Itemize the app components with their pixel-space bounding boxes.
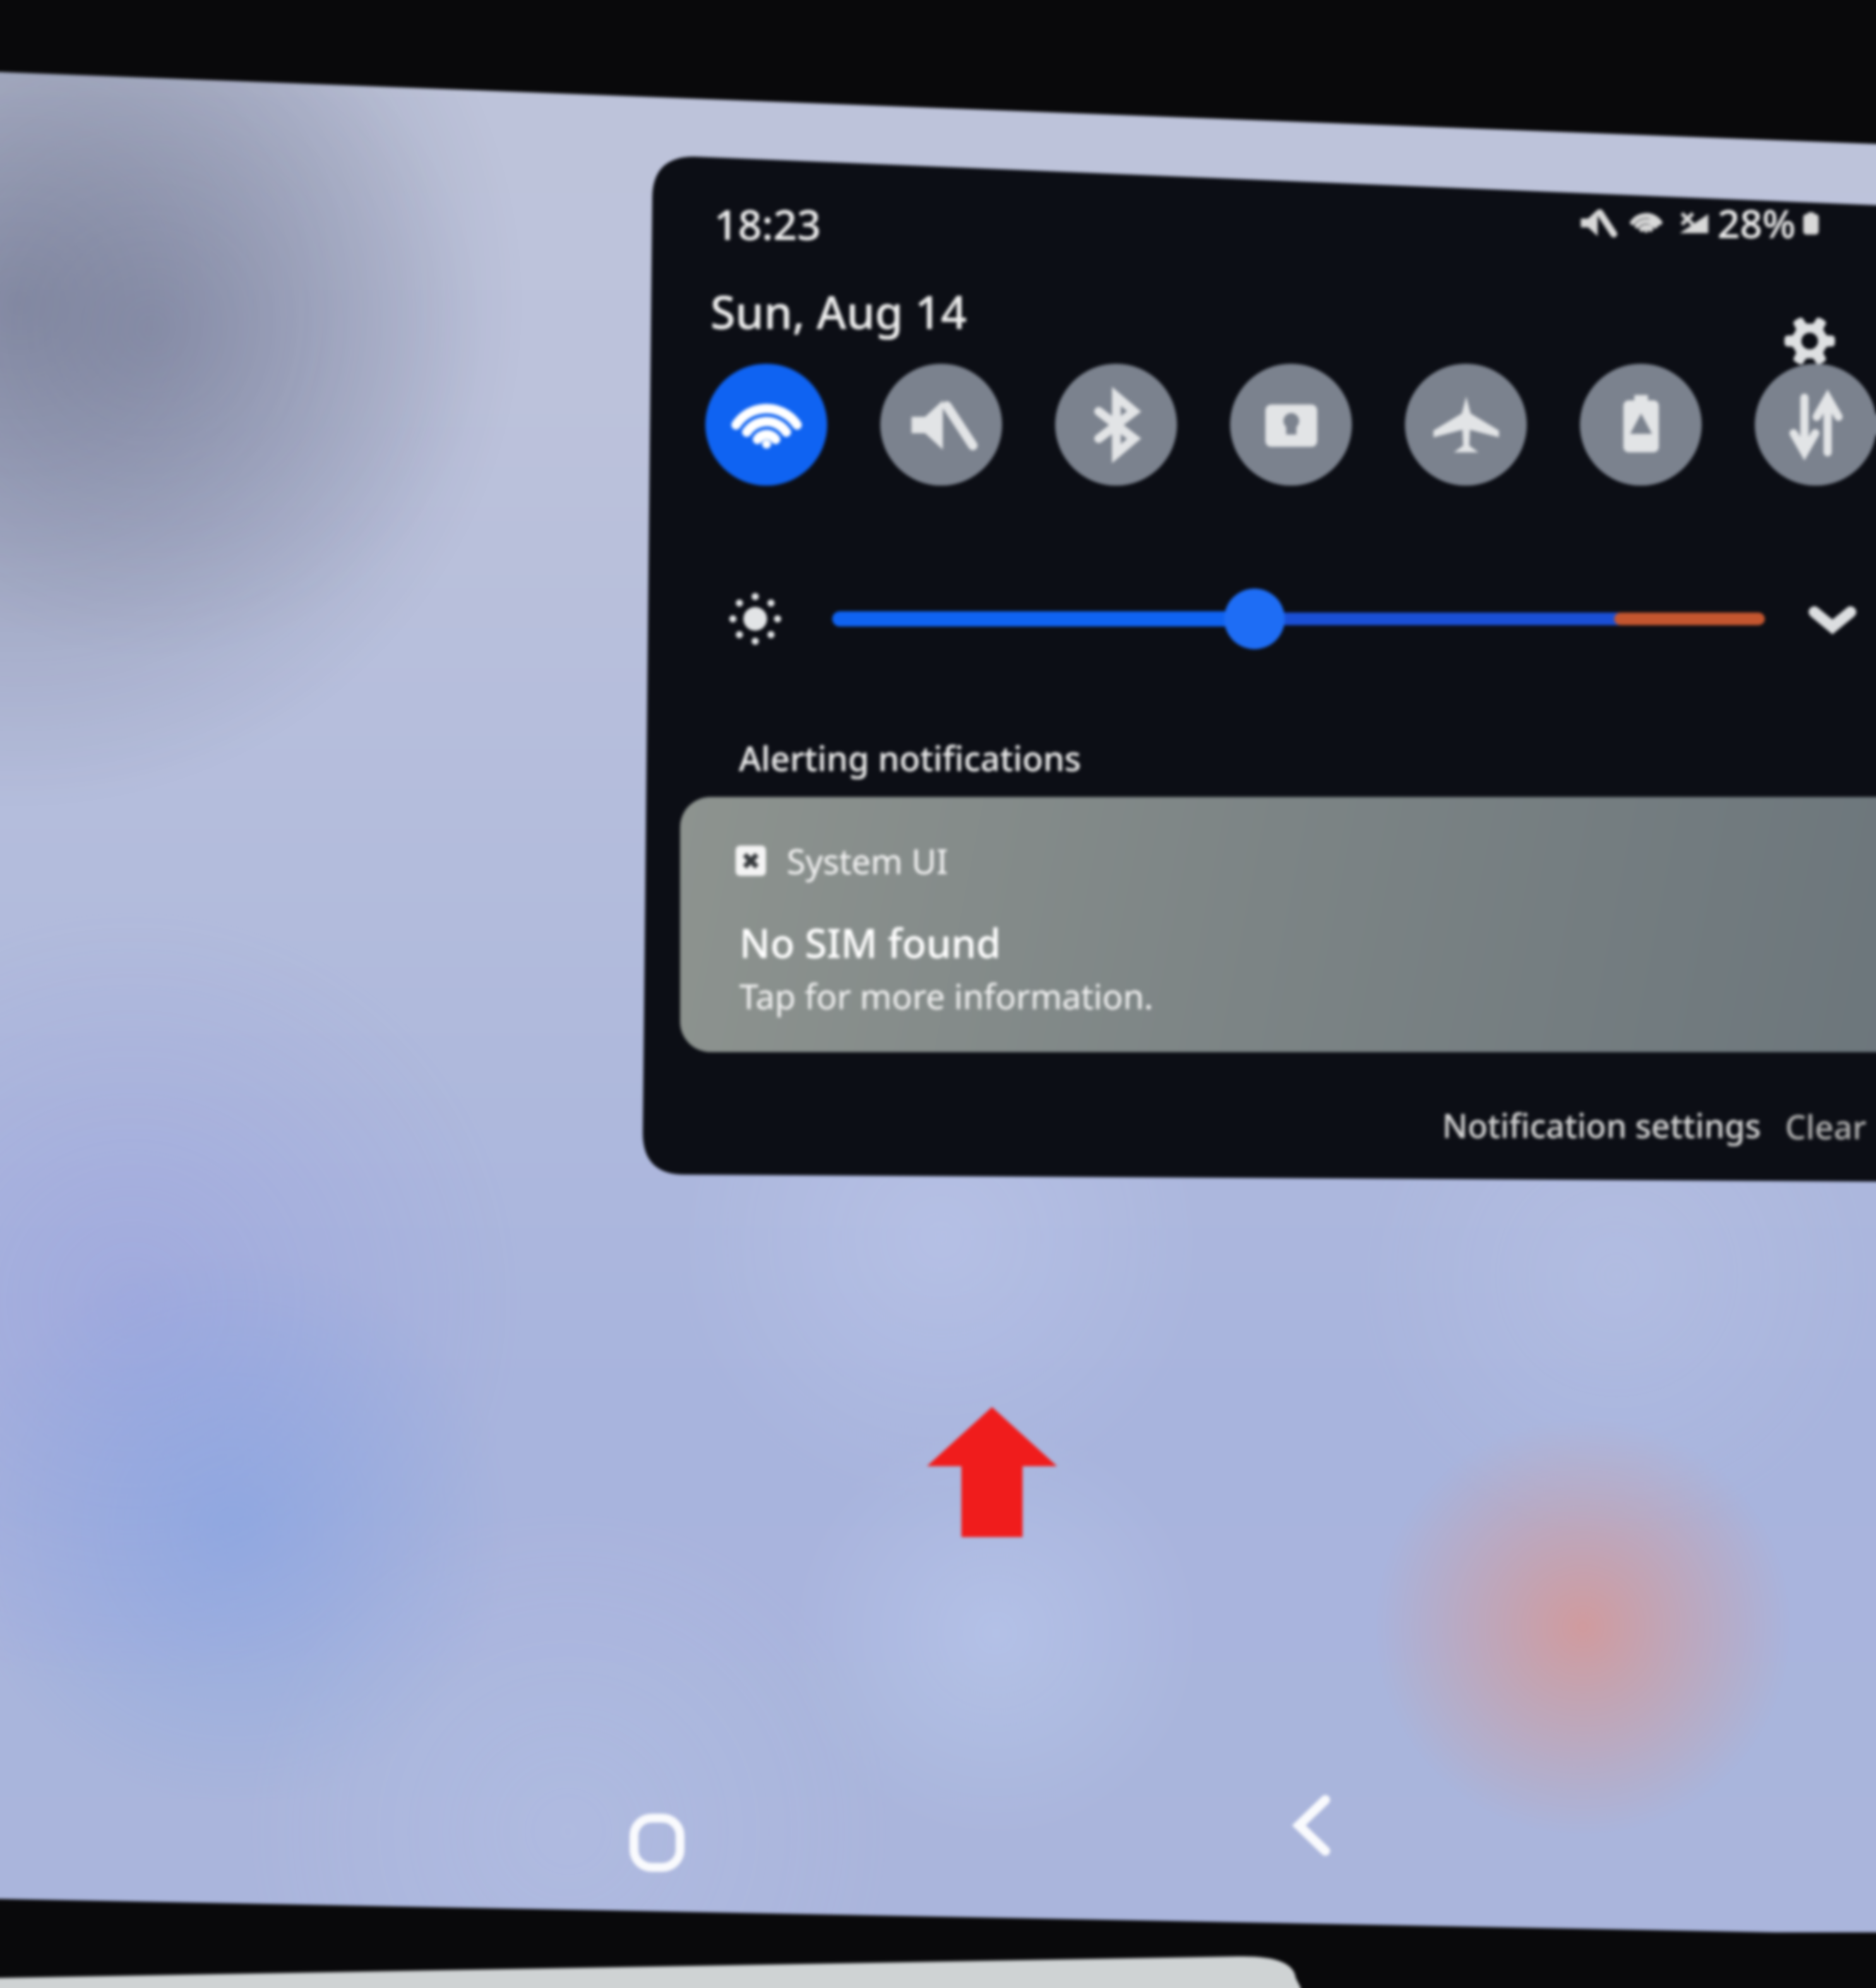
button[interactable]: Brightness	[833, 590, 1765, 647]
staticText: 28%	[1718, 196, 1796, 249]
button[interactable]: Sound off	[880, 364, 1002, 486]
button[interactable]: Home	[619, 1805, 695, 1881]
button[interactable]: Airplane mode	[1405, 364, 1527, 486]
staticText: Alerting notifications	[739, 734, 1082, 781]
staticText: Sun, Aug 14	[710, 280, 967, 342]
staticText: No SIM found	[739, 916, 1001, 970]
staticText: Tap for more information.	[739, 973, 1154, 1019]
button[interactable]: Back	[1274, 1787, 1350, 1863]
button[interactable]: Bluetooth	[1055, 364, 1177, 486]
button[interactable]: Notification settings	[1433, 1094, 1770, 1156]
staticText: Notification settings	[1442, 1103, 1761, 1147]
staticText: 18:23	[714, 195, 821, 252]
staticText: System UI	[787, 837, 948, 884]
button[interactable]: Settings	[1775, 306, 1844, 376]
button[interactable]: Expand quick settings	[1801, 587, 1864, 650]
button[interactable]: System UI	[680, 797, 1876, 1052]
button[interactable]: Clear	[1776, 1095, 1875, 1158]
staticText: Clear	[1785, 1104, 1867, 1149]
button[interactable]: Auto rotate	[1230, 364, 1352, 486]
button[interactable]: Mobile data	[1755, 364, 1876, 486]
button[interactable]: Battery saver	[1580, 364, 1702, 486]
button[interactable]: Wi-Fi	[705, 364, 827, 486]
